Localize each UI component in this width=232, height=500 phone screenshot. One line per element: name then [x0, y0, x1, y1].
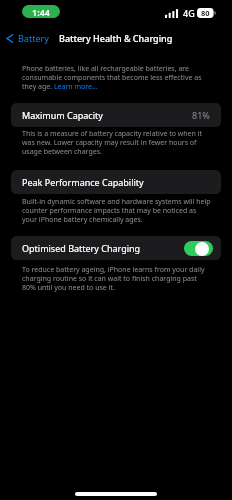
- staticText: Maximum Capacity: [22, 109, 103, 121]
- button[interactable]: Back to Battery: [0, 29, 57, 47]
- button[interactable]: Optimised Battery Charging toggle: [184, 241, 213, 256]
- button[interactable]: Peak Performance Capability: [11, 170, 221, 194]
- button[interactable]: Maximum Capacity: [11, 103, 221, 127]
- staticText: To reduce battery ageing, iPhone learns …: [22, 265, 212, 292]
- staticText: 4G: [183, 7, 195, 19]
- staticText: Battery Health & Charging: [59, 32, 173, 44]
- staticText: 81%: [192, 109, 210, 121]
- staticText: Optimised Battery Charging: [22, 242, 141, 254]
- staticText: Peak Performance Capability: [22, 176, 144, 188]
- staticText: Phone batteries, like all rechargeable b…: [22, 64, 212, 91]
- staticText: 1:44: [32, 6, 50, 18]
- button[interactable]: Optimised Battery Charging: [11, 236, 221, 260]
- staticText: Built-in dynamic software and hardware s…: [22, 197, 212, 224]
- staticText: 80: [201, 8, 210, 18]
- staticText: Battery: [18, 32, 49, 44]
- staticText: This is a measure of battery capacity re…: [22, 129, 212, 156]
